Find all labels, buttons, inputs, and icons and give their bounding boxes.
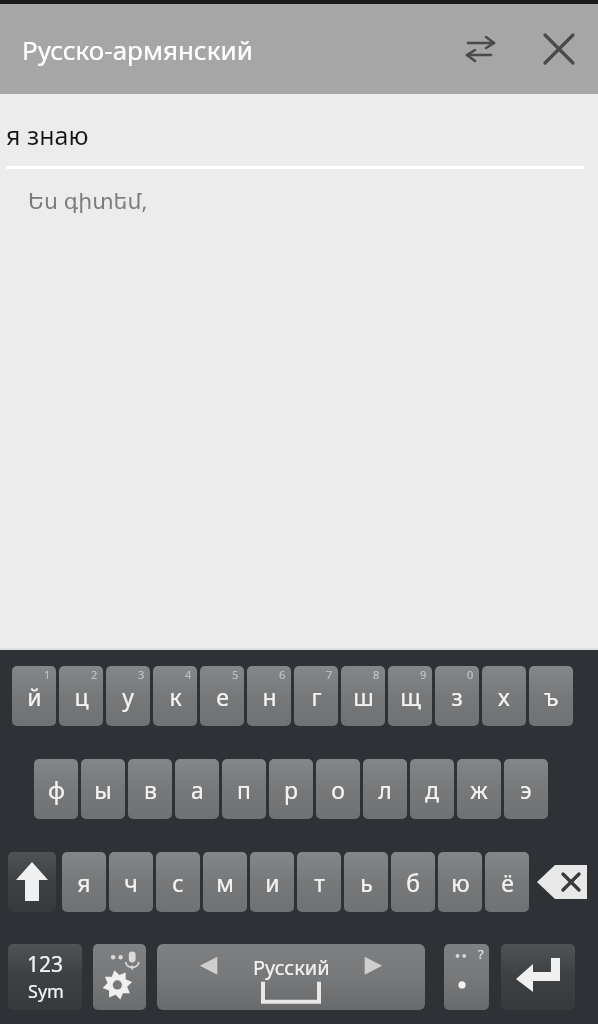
button[interactable]: л [363,759,407,819]
staticText: ц [74,681,89,712]
staticText: 5 [232,667,239,682]
button[interactable]: Русско-армянский [22,32,253,67]
staticText: е [216,681,229,712]
button[interactable]: п [222,759,266,819]
staticText: 123 [27,950,64,979]
button[interactable]: э [504,759,548,819]
staticText: я [77,867,91,898]
button[interactable]: ь [344,852,388,912]
button[interactable]: я знаю [6,118,89,152]
staticText: 1 [44,667,51,682]
button[interactable]: ж [457,759,501,819]
staticText: ю [451,867,470,898]
staticText: н [262,681,277,712]
button[interactable]: Period [444,944,489,1010]
button[interactable]: 9 [388,666,432,726]
button[interactable]: 2 [59,666,103,726]
button[interactable]: ч [109,852,153,912]
button[interactable]: т [297,852,341,912]
staticText: э [520,774,532,805]
staticText: ъ [544,681,559,712]
button[interactable]: 1 [12,666,56,726]
staticText: й [27,681,42,712]
staticText: к [169,681,182,712]
button[interactable]: 8 [341,666,385,726]
staticText: г [311,681,322,712]
button[interactable]: м [203,852,247,912]
staticText: ж [470,774,488,805]
button[interactable]: Shift [8,852,56,912]
staticText: 8 [373,667,380,682]
button[interactable]: Space, Русский [157,944,425,1010]
staticText: л [378,774,392,805]
button[interactable]: Settings [93,944,146,1010]
staticText: 9 [420,667,427,682]
button[interactable]: а [175,759,219,819]
button[interactable]: б [391,852,435,912]
button[interactable]: я [62,852,106,912]
staticText: Sym [28,979,64,1004]
staticText: х [498,681,510,712]
staticText: 4 [185,667,192,682]
staticText: 3 [138,667,145,682]
button[interactable]: 5 [200,666,244,726]
staticText: р [284,774,298,805]
staticText: 0 [467,667,474,682]
staticText: ч [124,867,138,898]
button[interactable]: и [250,852,294,912]
button[interactable]: д [410,759,454,819]
staticText: ? [478,945,484,963]
button[interactable]: х [482,666,526,726]
button[interactable]: Swap languages [455,23,507,75]
staticText: ё [501,867,514,898]
button[interactable]: ы [81,759,125,819]
staticText: п [237,774,251,805]
staticText: 7 [326,667,333,682]
staticText: ь [360,867,373,898]
staticText: в [144,774,157,805]
button[interactable]: ъ [529,666,573,726]
button[interactable]: ё [485,852,529,912]
staticText: 2 [91,667,98,682]
button[interactable]: 6 [247,666,291,726]
button[interactable]: Backspace [535,852,589,912]
button[interactable]: 4 [153,666,197,726]
staticText: о [331,774,345,805]
staticText: с [172,867,184,898]
button[interactable]: 123 [8,944,82,1010]
staticText: д [425,774,439,805]
button[interactable]: 7 [294,666,338,726]
button[interactable]: Enter [501,944,575,1010]
staticText: ы [94,774,112,805]
button[interactable]: 3 [106,666,150,726]
staticText: 6 [279,667,286,682]
button[interactable]: Close [532,22,586,76]
staticText: з [451,681,463,712]
button[interactable]: ю [438,852,482,912]
button[interactable]: о [316,759,360,819]
button[interactable]: р [269,759,313,819]
staticText: Русский [253,954,330,981]
button[interactable]: ф [34,759,78,819]
staticText: а [191,774,204,805]
staticText: ш [353,681,374,712]
button[interactable]: 0 [435,666,479,726]
staticText: щ [400,681,421,712]
button[interactable]: с [156,852,200,912]
staticText: у [122,681,134,712]
button[interactable]: в [128,759,172,819]
staticText: и [265,867,280,898]
staticText: т [314,867,325,898]
staticText: ф [48,774,65,805]
staticText: м [216,867,234,898]
button[interactable]: Ես գիտեմ, [28,185,148,215]
staticText: б [406,867,420,898]
